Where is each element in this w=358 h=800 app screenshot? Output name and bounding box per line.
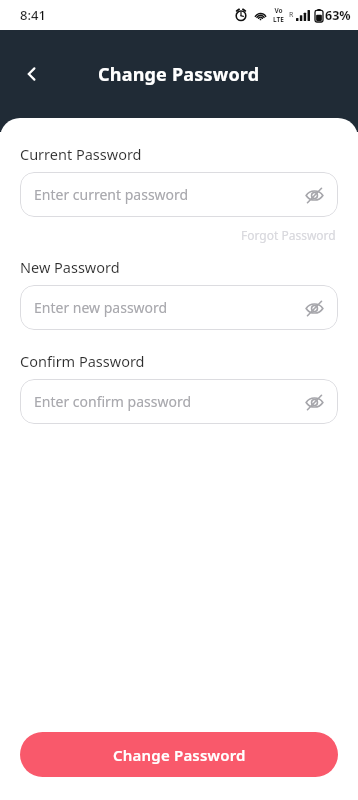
staticText: 8:41 [20, 6, 46, 24]
staticText: R [289, 10, 294, 20]
button[interactable]: Change Password [20, 732, 338, 777]
staticText: Current Password [20, 144, 142, 164]
staticText: New Password [20, 257, 120, 277]
button[interactable]: Enter new password [20, 285, 338, 330]
staticText: Vo [274, 6, 283, 15]
staticText: Enter confirm password [34, 392, 192, 411]
staticText: Enter current password [34, 185, 189, 204]
button[interactable]: Back [14, 56, 50, 92]
staticText: Enter new password [34, 298, 168, 317]
staticText: Change Password [113, 745, 246, 765]
button[interactable]: Enter confirm password [20, 379, 338, 424]
staticText: Forgot Password [241, 227, 336, 243]
button[interactable]: Show confirm password [298, 386, 330, 418]
button[interactable]: Forgot Password [239, 226, 338, 244]
staticText: 63% [325, 7, 351, 24]
button[interactable]: Show current password [298, 179, 330, 211]
button[interactable]: Enter current password [20, 172, 338, 217]
staticText: LTE [273, 15, 284, 24]
staticText: Confirm Password [20, 351, 145, 371]
button[interactable]: Show new password [298, 292, 330, 324]
staticText: Change Password [98, 62, 260, 87]
